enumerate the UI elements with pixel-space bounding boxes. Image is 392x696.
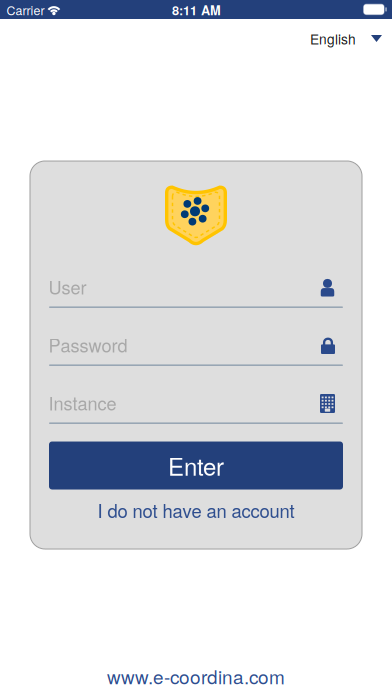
staticText: www.e-coordina.com — [107, 662, 285, 689]
staticText: 8:11 AM — [172, 1, 221, 19]
staticText: User — [48, 274, 86, 300]
button[interactable]: I do not have an account — [49, 491, 343, 529]
staticText: Carrier — [6, 1, 44, 19]
staticText: Password — [48, 332, 127, 358]
staticText: Enter — [168, 448, 224, 483]
button[interactable]: English — [296, 21, 392, 55]
button[interactable]: Instance — [49, 388, 343, 424]
button[interactable]: User — [49, 272, 343, 308]
staticText: Instance — [48, 390, 116, 416]
button[interactable]: www.e-coordina.com — [0, 656, 392, 696]
staticText: English — [310, 29, 356, 48]
staticText: I do not have an account — [97, 497, 294, 523]
button[interactable]: Enter — [49, 441, 343, 489]
button[interactable]: Password — [49, 330, 343, 366]
